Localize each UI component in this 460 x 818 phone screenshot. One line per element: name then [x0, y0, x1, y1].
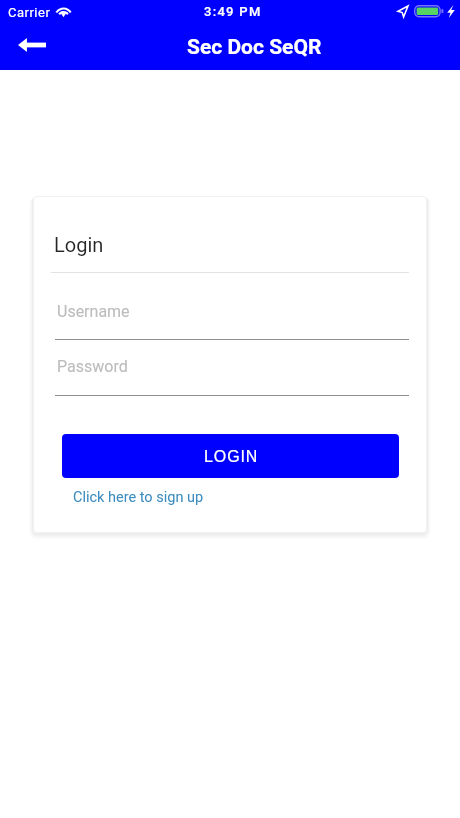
staticText: Click here to sign up [73, 489, 204, 506]
staticText: Sec Doc SeQR [187, 35, 322, 60]
button[interactable]: Click here to sign up [73, 485, 204, 509]
staticText: 3:49 PM [204, 4, 262, 19]
staticText: Carrier [8, 5, 51, 20]
staticText: Username [57, 302, 130, 321]
button[interactable]: Password [55, 349, 409, 397]
staticText: LOGIN [204, 448, 259, 466]
staticText: Login [54, 233, 104, 256]
button[interactable]: Back [8, 28, 56, 62]
button[interactable]: Username [55, 294, 409, 342]
button[interactable]: LOGIN [62, 434, 399, 478]
staticText: Password [57, 357, 128, 376]
